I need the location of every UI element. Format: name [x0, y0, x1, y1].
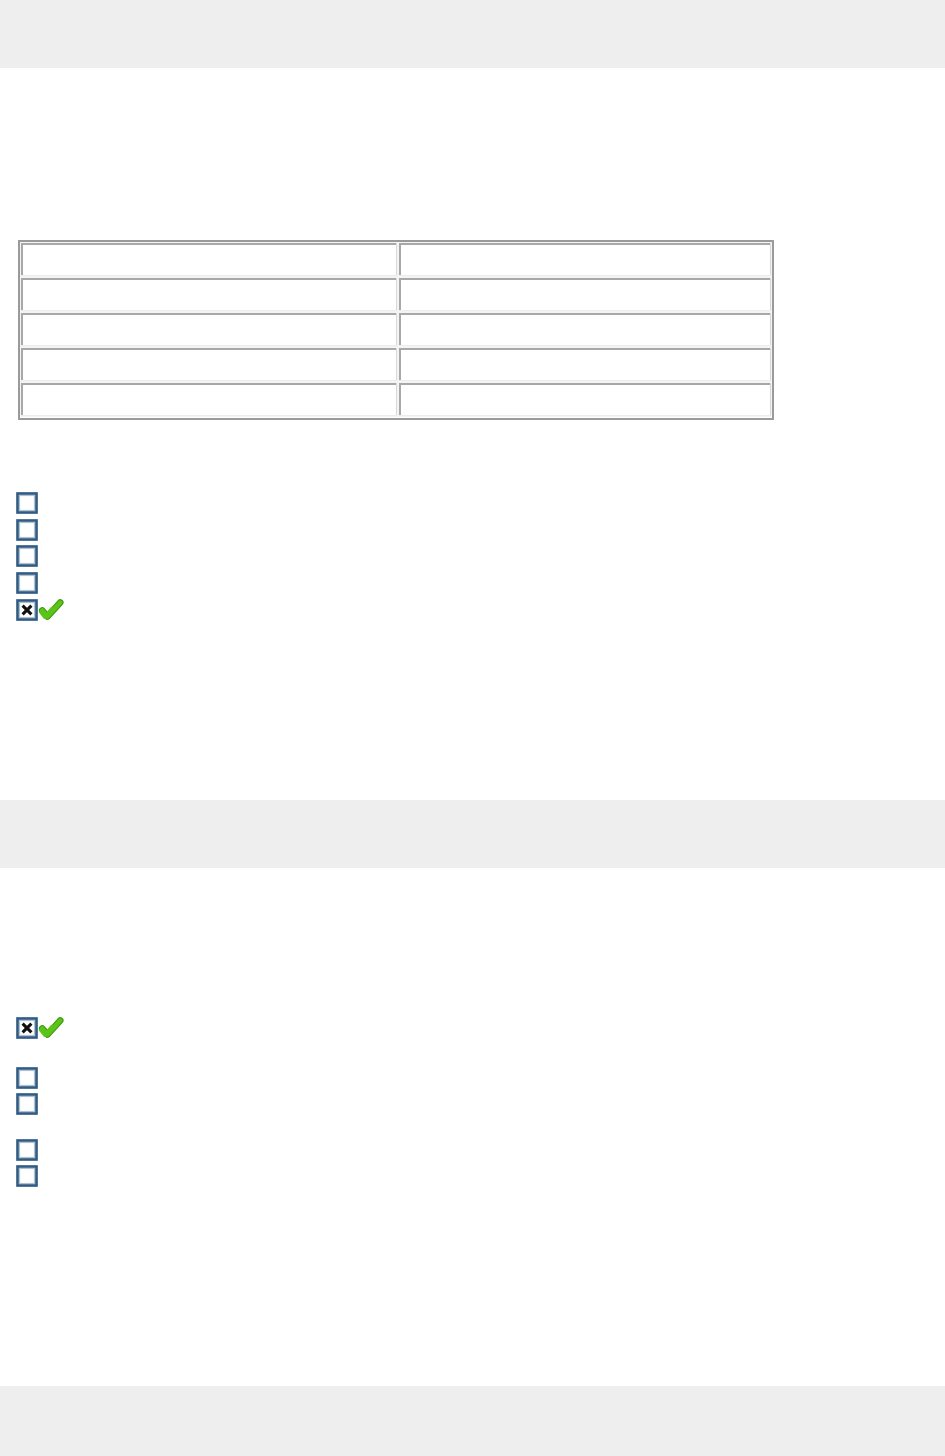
button[interactable]: Option 4: [16, 1165, 38, 1187]
button[interactable]: Option 2: [16, 519, 38, 541]
button[interactable]: Selected option: [16, 599, 38, 621]
other: Correct: [40, 599, 62, 621]
button[interactable]: Option 4: [16, 572, 38, 594]
button[interactable]: Option 1: [16, 492, 38, 514]
button[interactable]: Option 1: [16, 1067, 38, 1089]
other: Correct: [40, 1017, 62, 1039]
button[interactable]: Option 3: [16, 545, 38, 567]
button[interactable]: Option 3: [16, 1139, 38, 1161]
button[interactable]: Selected option: [16, 1017, 38, 1039]
button[interactable]: Option 2: [16, 1093, 38, 1115]
